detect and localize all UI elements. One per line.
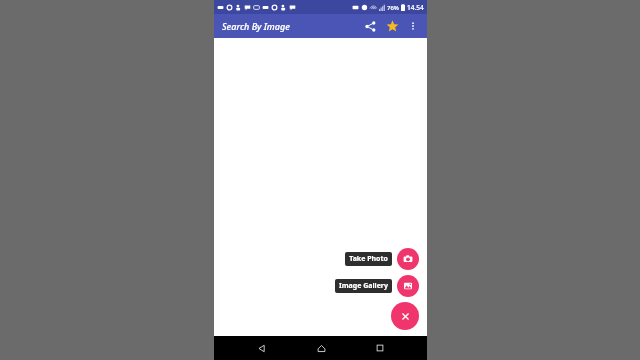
- button[interactable]: Take Photo: [397, 248, 419, 270]
- staticText: Image Gallery: [339, 281, 388, 291]
- button[interactable]: More options: [403, 16, 423, 36]
- button[interactable]: Home: [309, 336, 333, 360]
- button[interactable]: Take Photo: [345, 252, 392, 266]
- button[interactable]: Share: [359, 15, 381, 37]
- button[interactable]: Recents: [368, 336, 392, 360]
- button[interactable]: Favorite: [381, 15, 403, 37]
- button[interactable]: Back: [249, 336, 273, 360]
- button[interactable]: Image Gallery: [397, 275, 419, 297]
- staticText: 76%: [387, 4, 399, 12]
- staticText: Search By Image: [222, 20, 290, 32]
- staticText: 14.54: [407, 3, 424, 12]
- button[interactable]: Image Gallery: [335, 279, 392, 293]
- staticText: Take Photo: [349, 254, 388, 264]
- button[interactable]: Close menu: [391, 302, 419, 330]
